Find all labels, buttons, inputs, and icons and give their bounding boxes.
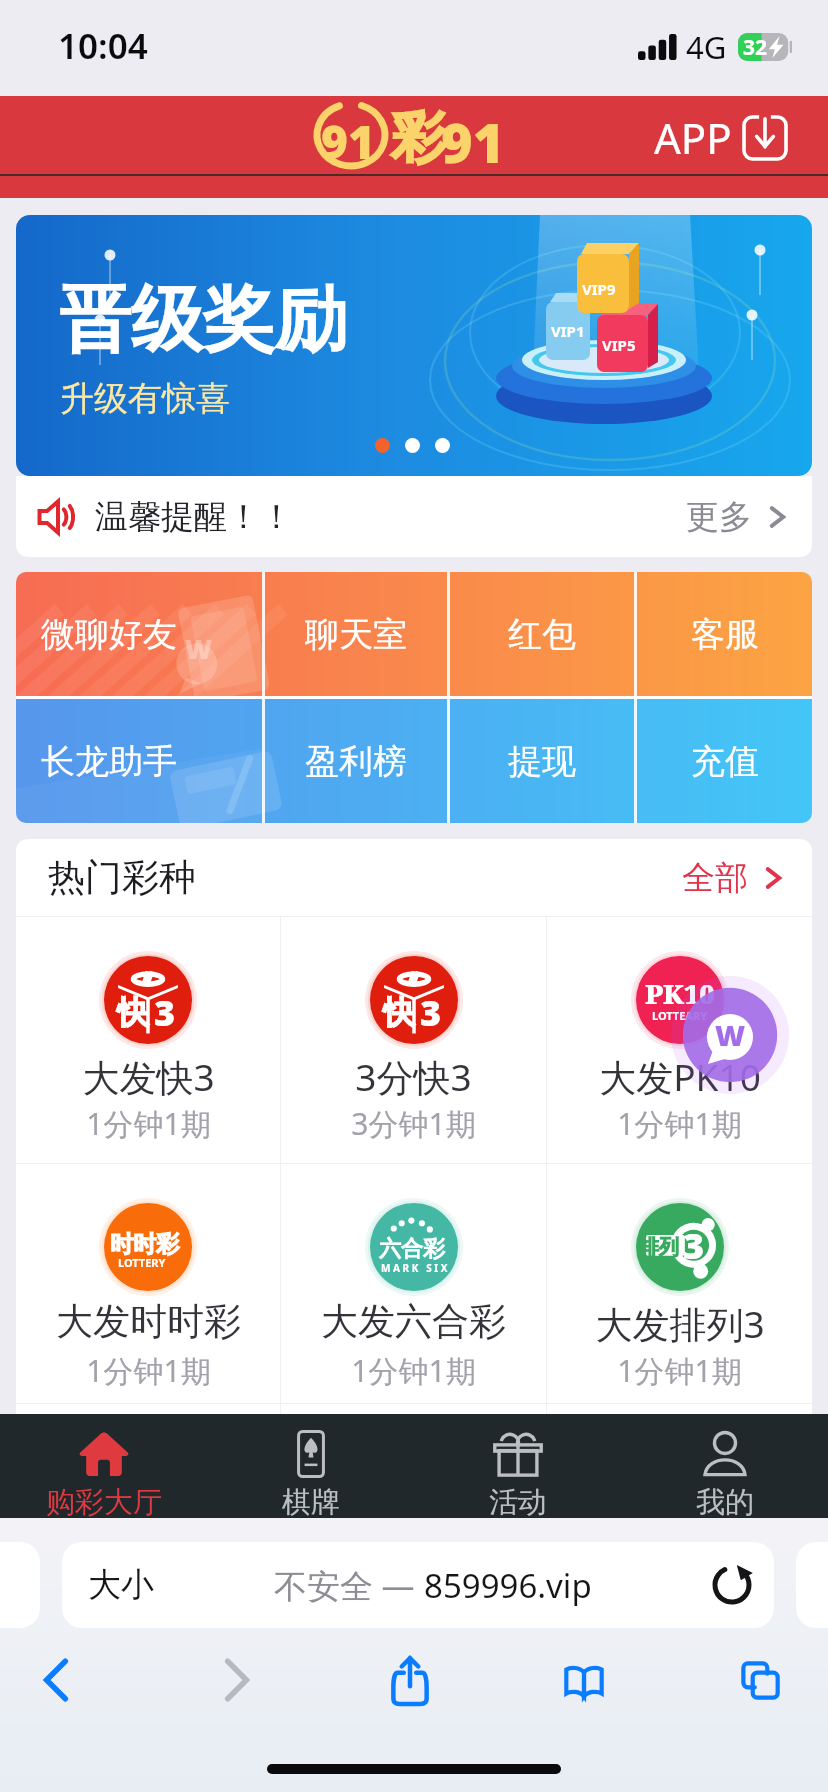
button[interactable]: Bookmarks <box>540 1636 628 1724</box>
staticText: 不安全 — <box>274 1563 424 1608</box>
staticText: 91 <box>321 110 375 173</box>
staticText: PK10 <box>645 975 715 1012</box>
other: Reload <box>712 1565 752 1605</box>
staticText: 更多 <box>686 496 752 538</box>
button[interactable]: 聊天室 <box>265 572 447 696</box>
staticText: 10:04 <box>58 22 148 70</box>
staticText: 大发PK10 <box>599 1051 761 1102</box>
staticText: 大发排列3 <box>595 1298 765 1349</box>
staticText: 4G <box>686 26 727 68</box>
staticText: M A R K S I X <box>381 1261 448 1275</box>
staticText: VIP1 <box>551 321 585 341</box>
button[interactable]: 盈利榜 <box>265 699 447 823</box>
staticText: W <box>185 631 213 666</box>
button[interactable]: APP <box>654 109 786 166</box>
button[interactable]: W <box>16 572 262 696</box>
staticText: 活动 <box>489 1484 547 1521</box>
button[interactable]: 时时彩 <box>16 1164 280 1403</box>
staticText: 聊天室 <box>305 613 407 656</box>
staticText: W <box>715 1015 746 1054</box>
staticText: 充值 <box>691 740 759 783</box>
staticText: 六合彩 <box>379 1235 445 1263</box>
staticText: APP <box>654 109 732 166</box>
button[interactable]: Share <box>366 1636 454 1724</box>
button[interactable]: 长龙助手 <box>16 699 262 823</box>
staticText: 大发快3 <box>82 1051 215 1102</box>
button[interactable]: PK10 <box>547 917 812 1163</box>
button[interactable]: 提现 <box>450 699 634 823</box>
staticText: 1分钟1期 <box>351 1350 476 1391</box>
button[interactable]: 充值 <box>637 699 812 823</box>
button[interactable]: 快 <box>281 917 546 1163</box>
staticText: 排列 <box>639 1235 679 1260</box>
button[interactable]: 温馨提醒！！ <box>16 476 812 557</box>
staticText: 我的 <box>696 1484 754 1521</box>
button[interactable]: 棋牌 <box>207 1414 414 1518</box>
staticText: 1分钟1期 <box>617 1350 742 1391</box>
staticText: 大发时时彩 <box>56 1298 241 1345</box>
staticText: 1分钟1期 <box>86 1350 211 1391</box>
staticText: 提现 <box>508 740 576 783</box>
staticText: 3 <box>420 988 442 1037</box>
staticText: 棋牌 <box>282 1484 340 1521</box>
button[interactable]: 热门彩种 <box>16 839 812 916</box>
staticText: 全部 <box>682 857 748 899</box>
button[interactable]: 红包 <box>450 572 634 696</box>
button[interactable]: 快 <box>16 917 280 1163</box>
button[interactable]: 六合彩 <box>281 1164 546 1403</box>
staticText: 彩 <box>391 104 445 172</box>
staticText: 大小 <box>88 1564 154 1606</box>
staticText: 32 <box>743 33 768 60</box>
button[interactable]: VIP1 <box>16 215 812 476</box>
staticText: 晋级奖励 <box>59 275 347 366</box>
staticText: 盈利榜 <box>305 740 407 783</box>
button[interactable]: 活动 <box>414 1414 621 1518</box>
staticText: 91 <box>441 105 505 175</box>
button[interactable]: Back <box>13 1636 101 1724</box>
staticText: 3分钟1期 <box>351 1103 476 1144</box>
staticText: 大发六合彩 <box>321 1298 506 1345</box>
button[interactable]: 客服 <box>637 572 812 696</box>
staticText: 红包 <box>508 613 576 656</box>
staticText: LOTTERY <box>118 1255 166 1270</box>
staticText: 升级有惊喜 <box>60 377 230 420</box>
staticText: 快 <box>383 993 414 1032</box>
button[interactable]: 3 <box>547 1164 812 1403</box>
staticText: 微聊好友 <box>41 613 177 656</box>
button[interactable]: Forward <box>192 1636 280 1724</box>
staticText: 长龙助手 <box>41 740 177 783</box>
staticText: 1分钟1期 <box>617 1103 742 1144</box>
staticText: 快 <box>117 993 148 1032</box>
staticText: 3 <box>683 1221 705 1270</box>
staticText: VIP5 <box>602 335 636 355</box>
staticText: 1分钟1期 <box>86 1103 211 1144</box>
button[interactable]: 大小 <box>62 1542 774 1628</box>
staticText: 购彩大厅 <box>46 1484 162 1521</box>
staticText: 客服 <box>691 613 759 656</box>
staticText: 3分快3 <box>355 1051 472 1102</box>
staticText: LOTTEARY <box>652 1008 708 1023</box>
staticText: 温馨提醒！！ <box>95 496 293 538</box>
staticText: 3 <box>154 988 176 1037</box>
staticText: 热门彩种 <box>48 854 196 901</box>
staticText: 时时彩 <box>110 1230 179 1259</box>
button[interactable]: 购彩大厅 <box>0 1414 207 1518</box>
staticText: 859996.vip <box>424 1563 592 1608</box>
staticText: VIP9 <box>582 279 616 299</box>
button[interactable]: 我的 <box>621 1414 828 1518</box>
button[interactable]: Tabs <box>716 1636 804 1724</box>
